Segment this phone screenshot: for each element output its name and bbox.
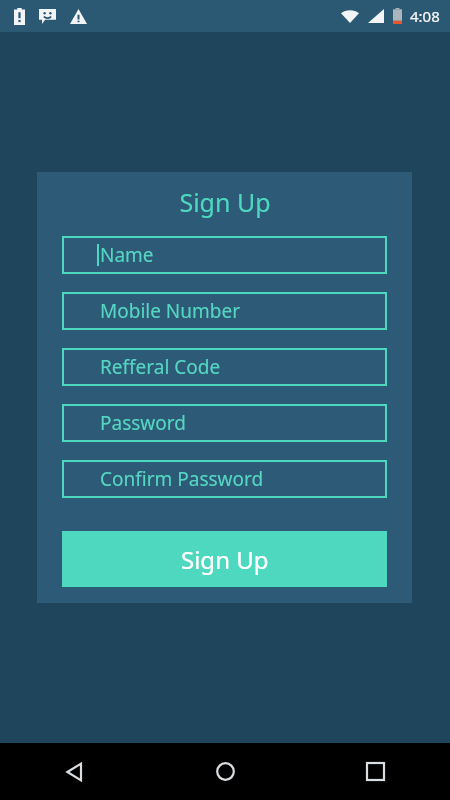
button[interactable]: Home xyxy=(150,743,300,800)
button[interactable]: Confirm Password xyxy=(62,460,387,498)
staticText: Name xyxy=(100,242,154,268)
staticText: Mobile Number xyxy=(100,298,241,324)
button[interactable]: Name xyxy=(62,236,387,274)
button[interactable]: Password xyxy=(62,404,387,442)
button[interactable]: Sign Up xyxy=(62,531,387,587)
button[interactable]: Mobile Number xyxy=(62,292,387,330)
staticText: Password xyxy=(100,410,186,436)
staticText: Sign Up xyxy=(181,543,269,576)
button[interactable]: Refferal Code xyxy=(62,348,387,386)
staticText: 4:08 xyxy=(410,6,440,26)
staticText: Refferal Code xyxy=(100,354,221,380)
staticText: Sign Up xyxy=(179,185,271,219)
staticText: Confirm Password xyxy=(100,466,264,492)
button[interactable]: Back xyxy=(0,743,150,800)
button[interactable]: Recent apps xyxy=(300,743,450,800)
